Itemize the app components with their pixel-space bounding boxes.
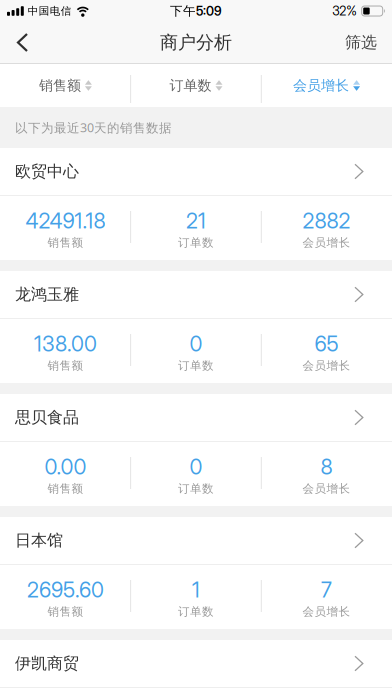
staticText: 0 <box>189 454 202 479</box>
staticText: 21 <box>186 208 206 233</box>
button[interactable]: 返回 <box>0 22 41 63</box>
staticText: 伊凯商贸 <box>15 653 79 674</box>
staticText: 65 <box>315 331 339 356</box>
staticText: 订单数 <box>169 77 211 94</box>
staticText: 订单数 <box>178 358 214 373</box>
staticText: 42491.18 <box>25 208 105 233</box>
staticText: 2882 <box>303 208 351 233</box>
button[interactable]: 日本馆 <box>0 517 392 564</box>
button[interactable]: 订单数 <box>131 64 261 107</box>
staticText: 以下为最近30天的销售数据 <box>15 119 172 136</box>
staticText: 2695.60 <box>27 577 104 602</box>
staticText: 订单数 <box>178 235 214 250</box>
staticText: 0 <box>189 331 202 356</box>
button[interactable]: 会员增长 <box>261 64 392 107</box>
button[interactable]: 思贝食品 <box>0 394 392 441</box>
staticText: 32% <box>332 3 357 18</box>
staticText: 中国电信 <box>28 4 72 18</box>
staticText: 138.00 <box>34 331 97 356</box>
staticText: 订单数 <box>178 481 214 496</box>
staticText: 订单数 <box>178 604 214 619</box>
staticText: 7 <box>321 577 332 602</box>
staticText: 日本馆 <box>15 530 63 551</box>
button[interactable]: 筛选 <box>333 22 392 63</box>
button[interactable]: 欧贸中心 <box>0 148 392 195</box>
staticText: 销售额 <box>47 358 83 373</box>
staticText: 0.00 <box>44 454 86 479</box>
staticText: 思贝食品 <box>15 407 79 428</box>
staticText: 会员增长 <box>293 77 349 94</box>
staticText: 筛选 <box>345 32 377 53</box>
staticText: 会员增长 <box>303 481 351 496</box>
staticText: 8 <box>321 454 333 479</box>
staticText: 欧贸中心 <box>15 161 79 182</box>
staticText: 商户分析 <box>160 31 232 54</box>
button[interactable]: 销售额 <box>0 64 131 107</box>
staticText: 会员增长 <box>303 358 351 373</box>
staticText: 下午5:09 <box>170 3 222 19</box>
staticText: 1 <box>192 577 200 602</box>
staticText: 会员增长 <box>303 604 351 619</box>
staticText: 龙鸿玉雅 <box>15 284 79 305</box>
button[interactable]: 龙鸿玉雅 <box>0 271 392 318</box>
button[interactable]: 伊凯商贸 <box>0 640 392 687</box>
staticText: 销售额 <box>47 481 83 496</box>
staticText: 销售额 <box>47 604 83 619</box>
staticText: 销售额 <box>39 77 81 94</box>
staticText: 会员增长 <box>303 235 351 250</box>
staticText: 销售额 <box>47 235 83 250</box>
